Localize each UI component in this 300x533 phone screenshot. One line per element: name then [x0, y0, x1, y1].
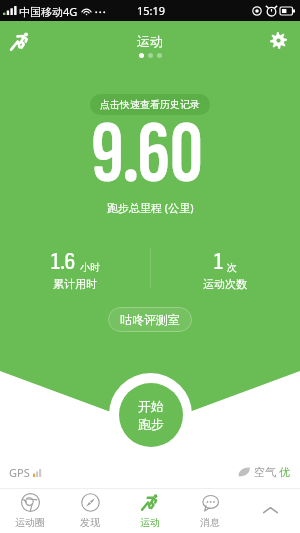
staticText: 运动圈	[15, 516, 45, 529]
staticText: 15:19	[137, 3, 166, 18]
button[interactable]: 运动圈	[0, 489, 60, 533]
staticText: 9.60	[91, 102, 203, 208]
staticText: 运动	[137, 33, 163, 49]
button[interactable]: 消息	[180, 489, 240, 533]
staticText: 1.6	[51, 247, 76, 276]
staticText: 点击快速查看历史记录	[100, 98, 200, 111]
staticText: 空气	[254, 465, 276, 479]
staticText: GPS	[9, 465, 30, 480]
button[interactable]: 点击快速查看历史记录	[90, 94, 210, 115]
staticText: 开始	[138, 398, 164, 414]
staticText: 运动	[140, 516, 160, 529]
staticText: 跑步总里程 (公里)	[107, 200, 194, 215]
staticText: 次	[227, 261, 237, 274]
staticText: 累计用时	[53, 277, 97, 291]
staticText: 跑步	[138, 416, 164, 432]
staticText: 运动次数	[203, 277, 247, 291]
button[interactable]: 开始	[109, 373, 192, 456]
staticText: 小时	[80, 261, 100, 274]
button[interactable]: 咕咚评测室	[108, 307, 192, 332]
button[interactable]: 运动	[120, 489, 180, 533]
button[interactable]: More	[240, 489, 300, 533]
staticText: 1	[214, 247, 223, 276]
button[interactable]: Settings	[263, 25, 293, 55]
button[interactable]: 发现	[60, 489, 120, 533]
staticText: 咕咚评测室	[120, 312, 180, 327]
staticText: 消息	[200, 516, 220, 529]
staticText: 优	[279, 465, 290, 479]
button[interactable]: Run	[5, 25, 35, 55]
staticText: 发现	[80, 516, 100, 529]
staticText: 中国移动4G	[19, 4, 78, 19]
